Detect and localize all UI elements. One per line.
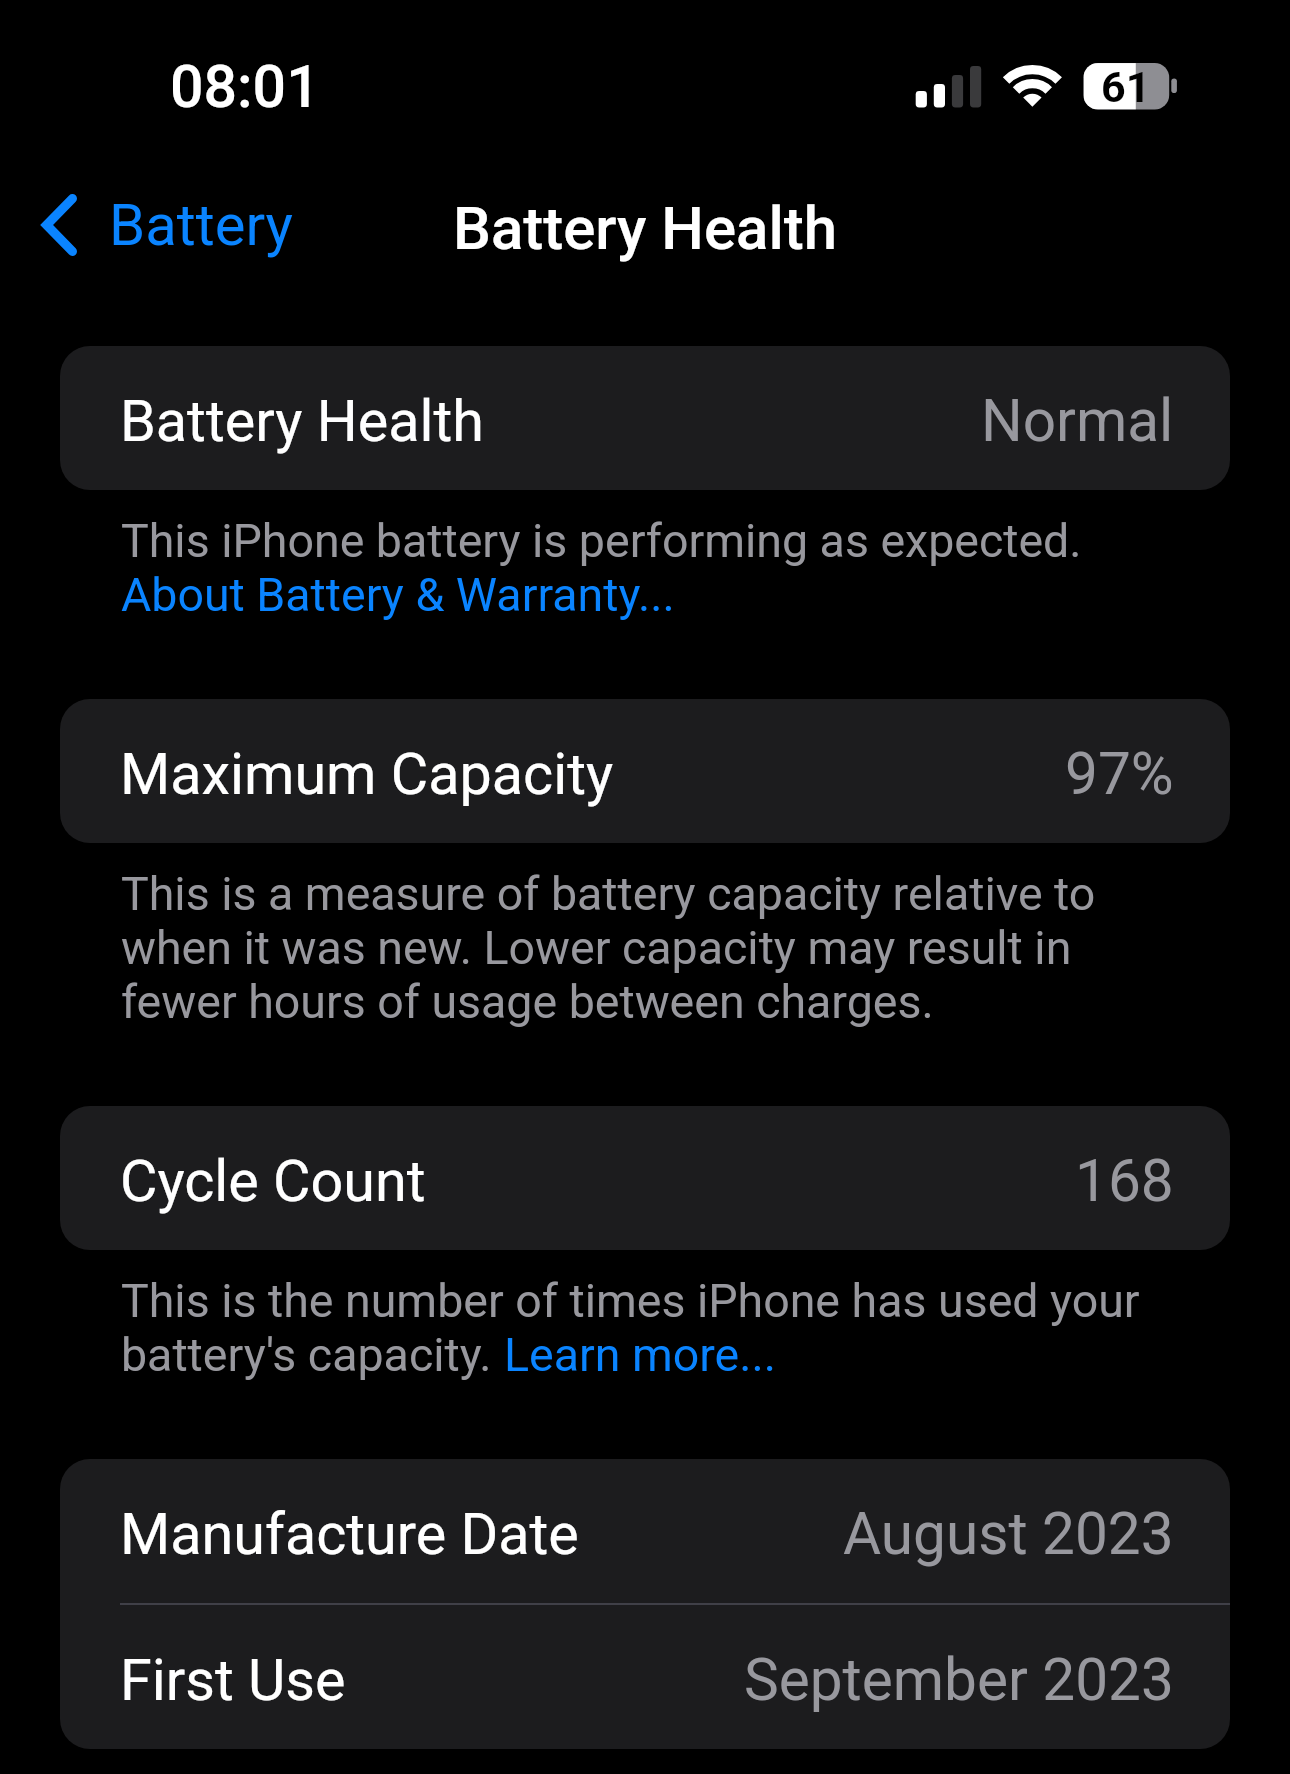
button[interactable]: Battery Health <box>60 346 1230 490</box>
button[interactable]: Back to Battery <box>0 177 317 273</box>
staticText: This iPhone battery is performing as exp… <box>121 514 1082 568</box>
staticText: September 2023 <box>744 1648 1174 1714</box>
button[interactable]: Cycle Count <box>60 1106 1230 1250</box>
button[interactable]: First Use <box>60 1605 1230 1749</box>
staticText: 61 <box>1101 62 1151 112</box>
button[interactable]: Maximum Capacity <box>60 699 1230 843</box>
staticText: Normal <box>981 389 1174 455</box>
staticText: This is a measure of battery capacity re… <box>121 867 1166 1029</box>
staticText: Battery Health <box>453 193 838 263</box>
staticText: This is the number of times iPhone has u… <box>121 1274 1140 1328</box>
staticText: August 2023 <box>843 1502 1174 1568</box>
staticText: Manufacture Date <box>120 1502 579 1568</box>
staticText: 168 <box>1075 1149 1174 1215</box>
staticText: Maximum Capacity <box>120 742 614 808</box>
staticText: Cycle Count <box>120 1149 426 1215</box>
button[interactable]: Learn more... <box>504 1328 777 1382</box>
staticText: 97% <box>1065 742 1174 808</box>
staticText: 08:01 <box>170 52 320 121</box>
other: Back to Battery <box>42 194 77 256</box>
staticText: First Use <box>120 1648 346 1714</box>
staticText: Battery <box>109 191 293 259</box>
staticText: battery's capacity. <box>121 1328 504 1382</box>
button[interactable]: Manufacture Date <box>60 1459 1230 1603</box>
button[interactable]: About Battery & Warranty... <box>121 568 675 622</box>
staticText: Battery Health <box>120 389 484 455</box>
